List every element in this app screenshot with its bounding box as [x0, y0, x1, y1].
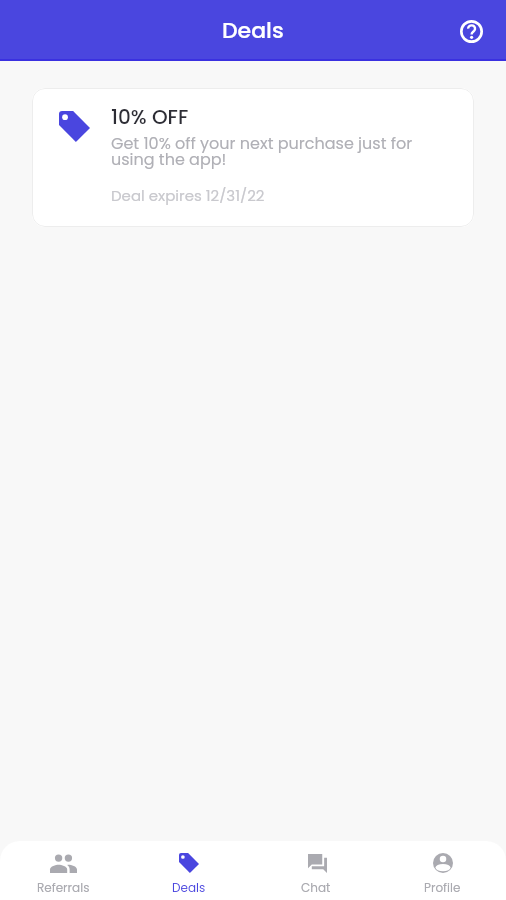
button[interactable]: Help [449, 9, 493, 53]
staticText: Deals [172, 879, 206, 896]
button[interactable]: Deals [126, 841, 252, 900]
staticText: Deal expires 12/31/22 [111, 185, 265, 206]
staticText: Get 10% off your next purchase just for … [111, 132, 456, 170]
button[interactable]: Referrals [0, 841, 126, 900]
button[interactable]: Profile [379, 841, 506, 900]
staticText: Deals [222, 15, 284, 46]
button[interactable]: 10% OFF [32, 88, 474, 227]
staticText: Chat [301, 879, 331, 896]
staticText: Profile [424, 879, 461, 896]
button[interactable]: Chat [252, 841, 379, 900]
staticText: 10% OFF [111, 103, 189, 131]
staticText: Referrals [37, 879, 90, 896]
